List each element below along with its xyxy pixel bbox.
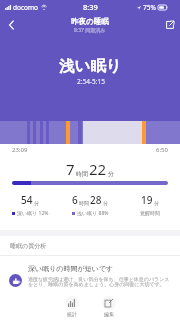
button[interactable]: Share xyxy=(160,15,180,35)
staticText: 深い眠りの時間が短いです xyxy=(28,264,114,273)
staticText: 6:50 xyxy=(156,146,168,154)
staticText: 時間 xyxy=(79,200,89,206)
staticText: 分 xyxy=(103,200,108,206)
staticText: 深い眠り 12% xyxy=(17,210,49,217)
button[interactable]: 編集 xyxy=(95,296,123,317)
staticText: 19 xyxy=(141,193,153,207)
staticText: 時間 xyxy=(76,170,88,178)
staticText: 7 xyxy=(66,159,75,179)
button[interactable]: 統計 xyxy=(58,296,86,317)
staticText: 8:39 xyxy=(83,2,98,12)
staticText: 8:37 同期済み xyxy=(74,27,106,34)
staticText: 23:09 xyxy=(12,146,28,154)
staticText: 22 xyxy=(89,159,107,179)
staticText: docomo xyxy=(13,3,38,12)
staticText: 覚醒時間 xyxy=(140,210,160,216)
staticText: 2:54-5:15 xyxy=(77,77,105,86)
staticText: 編集 xyxy=(104,311,114,317)
staticText: 54 xyxy=(21,193,33,207)
staticText: 6 xyxy=(72,193,78,207)
staticText: 分 xyxy=(34,200,39,206)
staticText: 75% xyxy=(143,3,156,12)
staticText: 分 xyxy=(108,170,114,178)
staticText: 浅い眠り 88% xyxy=(77,210,109,217)
staticText: 28 xyxy=(90,193,102,207)
staticText: 統計 xyxy=(67,311,77,317)
staticText: 浅い眠り xyxy=(59,56,122,76)
staticText: 昨夜の睡眠 xyxy=(71,17,109,26)
button[interactable]: Back xyxy=(0,14,22,36)
button[interactable]: 深い眠りの時間が短いです xyxy=(0,256,180,288)
staticText: 睡眠の質分析 xyxy=(10,242,47,250)
staticText: 適度な疲労感は避け、良い気分を保ち、仕事と休息のバランスをとり、睡眠の質を高めま… xyxy=(28,276,174,288)
staticText: 分 xyxy=(154,200,159,206)
